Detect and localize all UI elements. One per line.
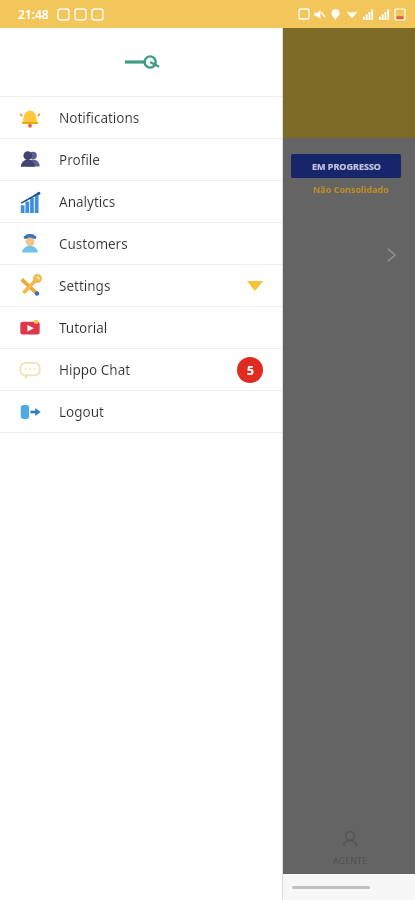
staticText: Settings <box>59 277 111 295</box>
button[interactable]: EM PROGRESSO <box>291 154 401 178</box>
staticText: EM PROGRESSO <box>312 160 381 172</box>
button[interactable]: Customers <box>0 223 283 264</box>
button[interactable]: Tutorial <box>0 307 283 348</box>
other: Expand Settings <box>247 281 263 291</box>
staticText: 4610 Felguei… <box>14 203 109 222</box>
staticText: AGENTE <box>333 854 367 866</box>
button[interactable]: Logout <box>0 391 283 432</box>
other: Open <box>383 246 399 264</box>
staticText: Analytics <box>59 193 116 211</box>
staticText: 24 <box>197 88 218 113</box>
staticText: Não Consolidado <box>313 183 389 195</box>
staticText: Customers <box>59 235 128 253</box>
button[interactable]: Settings <box>0 265 283 306</box>
staticText: Notifications <box>59 109 140 127</box>
staticText: Profile <box>59 151 100 169</box>
staticText: Logout <box>59 403 104 421</box>
staticText: …beiros, Felgu… <box>14 278 106 288</box>
button[interactable]: Hippo Chat <box>0 349 283 390</box>
staticText: Hippo Chat <box>59 361 131 379</box>
button[interactable]: More options <box>132 44 143 67</box>
staticText: 5 <box>247 362 254 378</box>
button[interactable]: Notifications <box>0 97 283 138</box>
staticText: 21:48 <box>18 6 49 22</box>
button[interactable]: Analytics <box>0 181 283 222</box>
button[interactable]: Profile <box>0 139 283 180</box>
staticText: Tutorial <box>59 319 108 337</box>
